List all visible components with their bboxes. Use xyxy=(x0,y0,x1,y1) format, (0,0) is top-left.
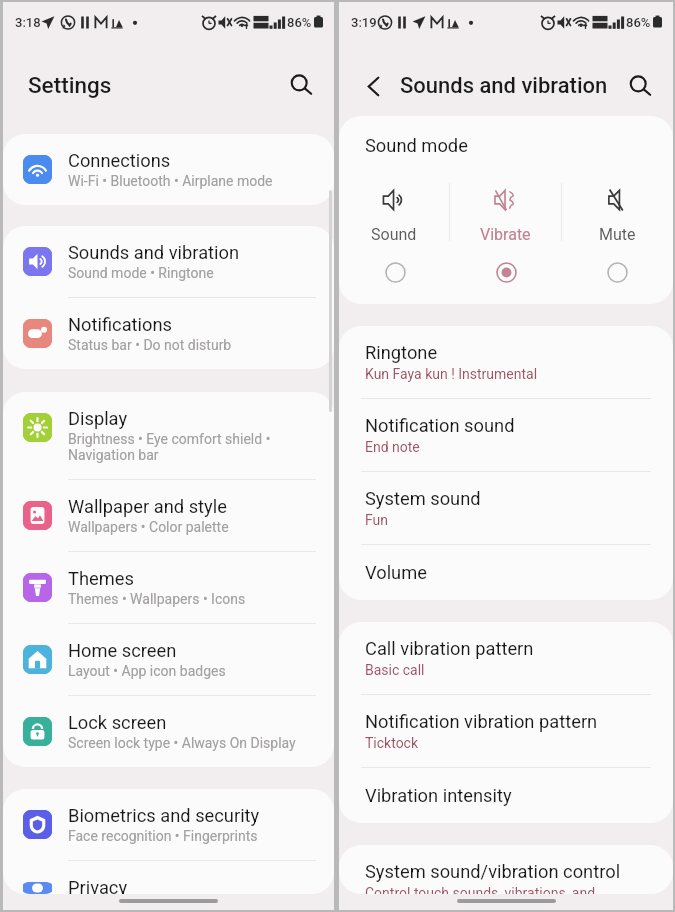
staticText: Themes xyxy=(68,568,134,589)
staticText: Notification sound xyxy=(365,415,515,436)
button[interactable]: Back xyxy=(356,69,390,103)
staticText: Connections xyxy=(68,150,171,171)
staticText: Wallpaper and style xyxy=(68,496,227,517)
button[interactable]: Ringtone xyxy=(339,326,673,399)
staticText: End note xyxy=(365,439,420,455)
staticText: Home screen xyxy=(68,640,177,661)
staticText: Display xyxy=(68,408,128,429)
button[interactable]: Privacy xyxy=(3,861,334,910)
button[interactable]: Sound xyxy=(339,175,449,247)
staticText: Layout • App icon badges xyxy=(68,663,226,679)
staticText: System sound xyxy=(365,488,481,509)
staticText: Notification vibration pattern xyxy=(365,711,598,732)
staticText: 3:19 xyxy=(351,15,377,30)
button[interactable]: Call vibration pattern xyxy=(339,622,673,695)
button[interactable]: Biometrics and security xyxy=(3,789,334,861)
button[interactable]: Connections xyxy=(3,134,334,205)
staticText: Volume xyxy=(365,562,427,583)
staticText: Notifications xyxy=(68,314,173,335)
staticText: Vibrate xyxy=(480,225,531,244)
button[interactable]: Home screen xyxy=(3,624,334,696)
staticText: Basic call xyxy=(365,662,425,678)
button[interactable]: Search xyxy=(281,65,321,105)
button[interactable]: Search xyxy=(621,67,659,105)
button[interactable]: Volume xyxy=(339,545,673,600)
staticText: Vibration intensity xyxy=(365,785,512,806)
staticText: Fun xyxy=(365,512,389,528)
staticText: 86% xyxy=(626,15,651,30)
button[interactable]: Vibrate xyxy=(450,175,561,247)
button[interactable]: Themes xyxy=(3,552,334,624)
button[interactable]: Notification sound xyxy=(339,399,673,472)
button[interactable]: Lock screen xyxy=(3,696,334,767)
staticText: Ticktock xyxy=(365,735,419,751)
staticText: Themes • Wallpapers • Icons xyxy=(68,591,246,607)
staticText: Screen lock type • Always On Display xyxy=(68,735,296,751)
button[interactable]: Display xyxy=(3,392,334,480)
staticText: Settings xyxy=(28,72,112,98)
staticText: Sounds and vibration xyxy=(68,242,240,263)
staticText: Biometrics and security xyxy=(68,805,260,826)
staticText: 3:18 xyxy=(15,15,41,30)
button[interactable] xyxy=(562,251,673,293)
button[interactable]: Sounds and vibration xyxy=(3,226,334,298)
staticText: Lock screen xyxy=(68,712,167,733)
staticText: Sound mode xyxy=(365,135,468,156)
button[interactable]: System sound/vibration control xyxy=(339,845,673,910)
staticText: Face recognition • Fingerprints xyxy=(68,828,258,844)
button[interactable] xyxy=(451,251,562,293)
button[interactable]: Mute xyxy=(562,175,673,247)
staticText: Privacy xyxy=(68,877,128,894)
staticText: Brightness • Eye comfort shield • Naviga… xyxy=(68,431,314,463)
button[interactable]: System sound xyxy=(339,472,673,545)
staticText: Call vibration pattern xyxy=(365,638,534,659)
staticText: System sound/vibration control xyxy=(365,861,621,882)
staticText: Sounds and vibration xyxy=(400,73,608,99)
button[interactable]: Notifications xyxy=(3,298,334,369)
staticText: 86% xyxy=(287,15,312,30)
staticText: Wi-Fi • Bluetooth • Airplane mode xyxy=(68,173,273,189)
staticText: Status bar • Do not disturb xyxy=(68,337,232,353)
staticText: Mute xyxy=(599,225,636,244)
staticText: Sound mode • Ringtone xyxy=(68,265,214,281)
button[interactable]: Notification vibration pattern xyxy=(339,695,673,768)
staticText: Sound xyxy=(371,225,417,244)
staticText: Ringtone xyxy=(365,342,438,363)
staticText: Control touch sounds, vibrations, and ke… xyxy=(365,885,651,894)
staticText: Kun Faya kun ! Instrumental xyxy=(365,366,538,382)
button[interactable]: Wallpaper and style xyxy=(3,480,334,552)
button[interactable]: Vibration intensity xyxy=(339,768,673,823)
staticText: Wallpapers • Color palette xyxy=(68,519,229,535)
button[interactable] xyxy=(339,251,451,293)
